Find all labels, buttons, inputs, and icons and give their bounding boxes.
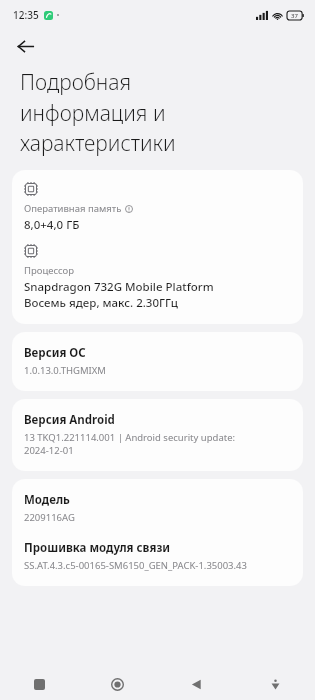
staticText: Прошивка модуля связи <box>24 540 171 556</box>
staticText: 2209116AG <box>24 511 75 524</box>
button[interactable]: Hide keyboard <box>236 668 315 700</box>
staticText: 12:35 <box>13 8 39 22</box>
button[interactable]: Версия ОС <box>12 332 303 391</box>
staticText: Восемь ядер, макс. 2.30ГГц <box>24 295 178 311</box>
staticText: Подробная информация и характеристики <box>20 68 176 157</box>
button[interactable]: Home <box>78 668 157 700</box>
button[interactable]: Back <box>8 30 42 62</box>
staticText: Процессор <box>24 264 75 277</box>
button[interactable]: Back <box>157 668 236 700</box>
staticText: 1.0.13.0.THGMIXM <box>24 364 106 377</box>
staticText: 2024-12-01 <box>24 444 74 457</box>
staticText: Модель <box>24 492 70 508</box>
button[interactable]: Recents <box>0 668 78 700</box>
staticText: SS.AT.4.3.c5-00165-SM6150_GEN_PACK-1.350… <box>24 559 247 572</box>
staticText: Оперативная память <box>24 202 122 215</box>
button[interactable]: Версия Android <box>12 399 303 471</box>
staticText: Snapdragon 732G Mobile Platform <box>24 279 214 295</box>
staticText: 13 TKQ1.221114.001 | Android security up… <box>24 431 236 444</box>
button[interactable]: Оперативная память <box>12 170 303 324</box>
button[interactable]: Модель <box>12 479 303 586</box>
staticText: Версия Android <box>24 412 115 428</box>
staticText: 37 <box>291 12 298 20</box>
staticText: 8,0+4,0 ГБ <box>24 217 80 233</box>
staticText: Версия ОС <box>24 345 86 361</box>
